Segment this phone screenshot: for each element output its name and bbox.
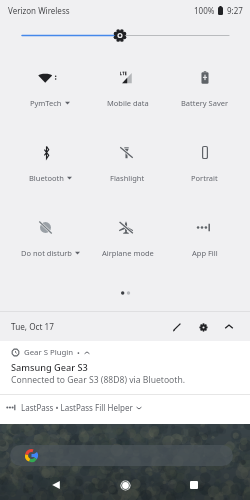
staticText: Verizon Wireless (8, 5, 70, 16)
staticText: Airplane mode (102, 248, 154, 258)
staticText: Samsung Gear S3 (11, 361, 88, 374)
staticText: LastPass • LastPass Fill Helper (21, 402, 133, 413)
button[interactable]: Edit (164, 314, 190, 340)
staticText: • (77, 348, 80, 358)
staticText: Bluetooth (29, 173, 64, 183)
staticText: Gear S Plugin (24, 347, 74, 358)
button[interactable]: App Fill (166, 202, 243, 262)
button[interactable]: Back (43, 472, 69, 498)
button[interactable]: Recents (181, 472, 207, 498)
staticText: Mobile data (107, 98, 149, 108)
button[interactable]: Mobile data (89, 52, 166, 112)
staticText: Flashlight (110, 173, 145, 183)
button[interactable]: Flashlight (89, 127, 166, 187)
button[interactable]: Do not disturb (11, 202, 89, 262)
button[interactable]: Portrait (166, 127, 243, 187)
button[interactable]: Gear S Plugin (0, 341, 250, 394)
staticText: Connected to Gear S3 (88D8) via Bluetoot… (11, 374, 186, 386)
staticText: App Fill (192, 248, 218, 258)
button[interactable]: Bluetooth (11, 127, 89, 187)
button[interactable]: Airplane mode (89, 202, 166, 262)
staticText: 9:27 (227, 5, 243, 16)
button[interactable]: Home (112, 472, 138, 498)
staticText: Do not disturb (21, 248, 72, 258)
button[interactable]: Collapse (216, 314, 242, 340)
staticText: PymTech (30, 98, 62, 108)
button[interactable]: Settings (190, 314, 216, 340)
staticText: 100% (194, 5, 215, 16)
staticText: Portrait (191, 173, 218, 183)
button[interactable]: PymTech (11, 52, 89, 112)
button[interactable]: LastPass • LastPass Fill Helper (6, 393, 250, 422)
button[interactable]: Battery Saver (166, 52, 243, 112)
staticText: Battery Saver (181, 98, 229, 108)
staticText: Tue, Oct 17 (11, 321, 54, 332)
button[interactable] (10, 445, 233, 466)
